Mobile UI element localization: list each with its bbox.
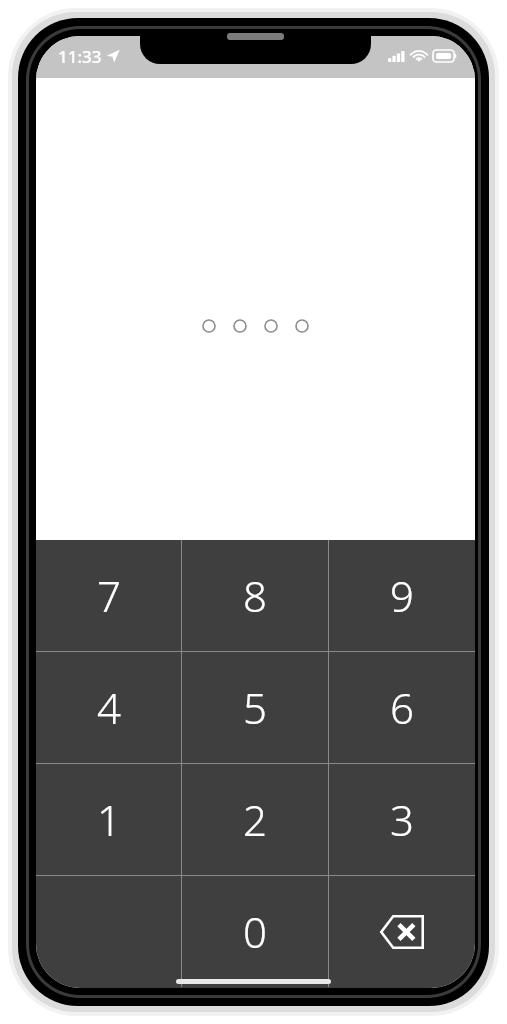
staticText: 2 xyxy=(243,791,267,848)
staticText: 8 xyxy=(243,567,267,624)
button[interactable]: 6 xyxy=(329,652,475,763)
button[interactable]: 1 xyxy=(36,764,181,875)
staticText: 11:33 xyxy=(58,45,102,68)
staticText: 5 xyxy=(243,679,267,736)
staticText: 7 xyxy=(97,567,121,624)
button[interactable]: 8 xyxy=(182,540,328,651)
button[interactable]: 4 xyxy=(36,652,181,763)
staticText: 0 xyxy=(243,903,267,960)
button[interactable]: 2 xyxy=(182,764,328,875)
button[interactable]: 9 xyxy=(329,540,475,651)
staticText: 3 xyxy=(390,791,414,848)
button[interactable]: 5 xyxy=(182,652,328,763)
staticText: 4 xyxy=(97,679,121,736)
staticText: 6 xyxy=(390,679,414,736)
button[interactable]: 0 xyxy=(182,876,328,987)
staticText: 9 xyxy=(390,567,414,624)
button[interactable]: 7 xyxy=(36,540,181,651)
button[interactable]: 3 xyxy=(329,764,475,875)
staticText: 1 xyxy=(97,791,121,848)
button[interactable]: Delete xyxy=(329,876,475,987)
